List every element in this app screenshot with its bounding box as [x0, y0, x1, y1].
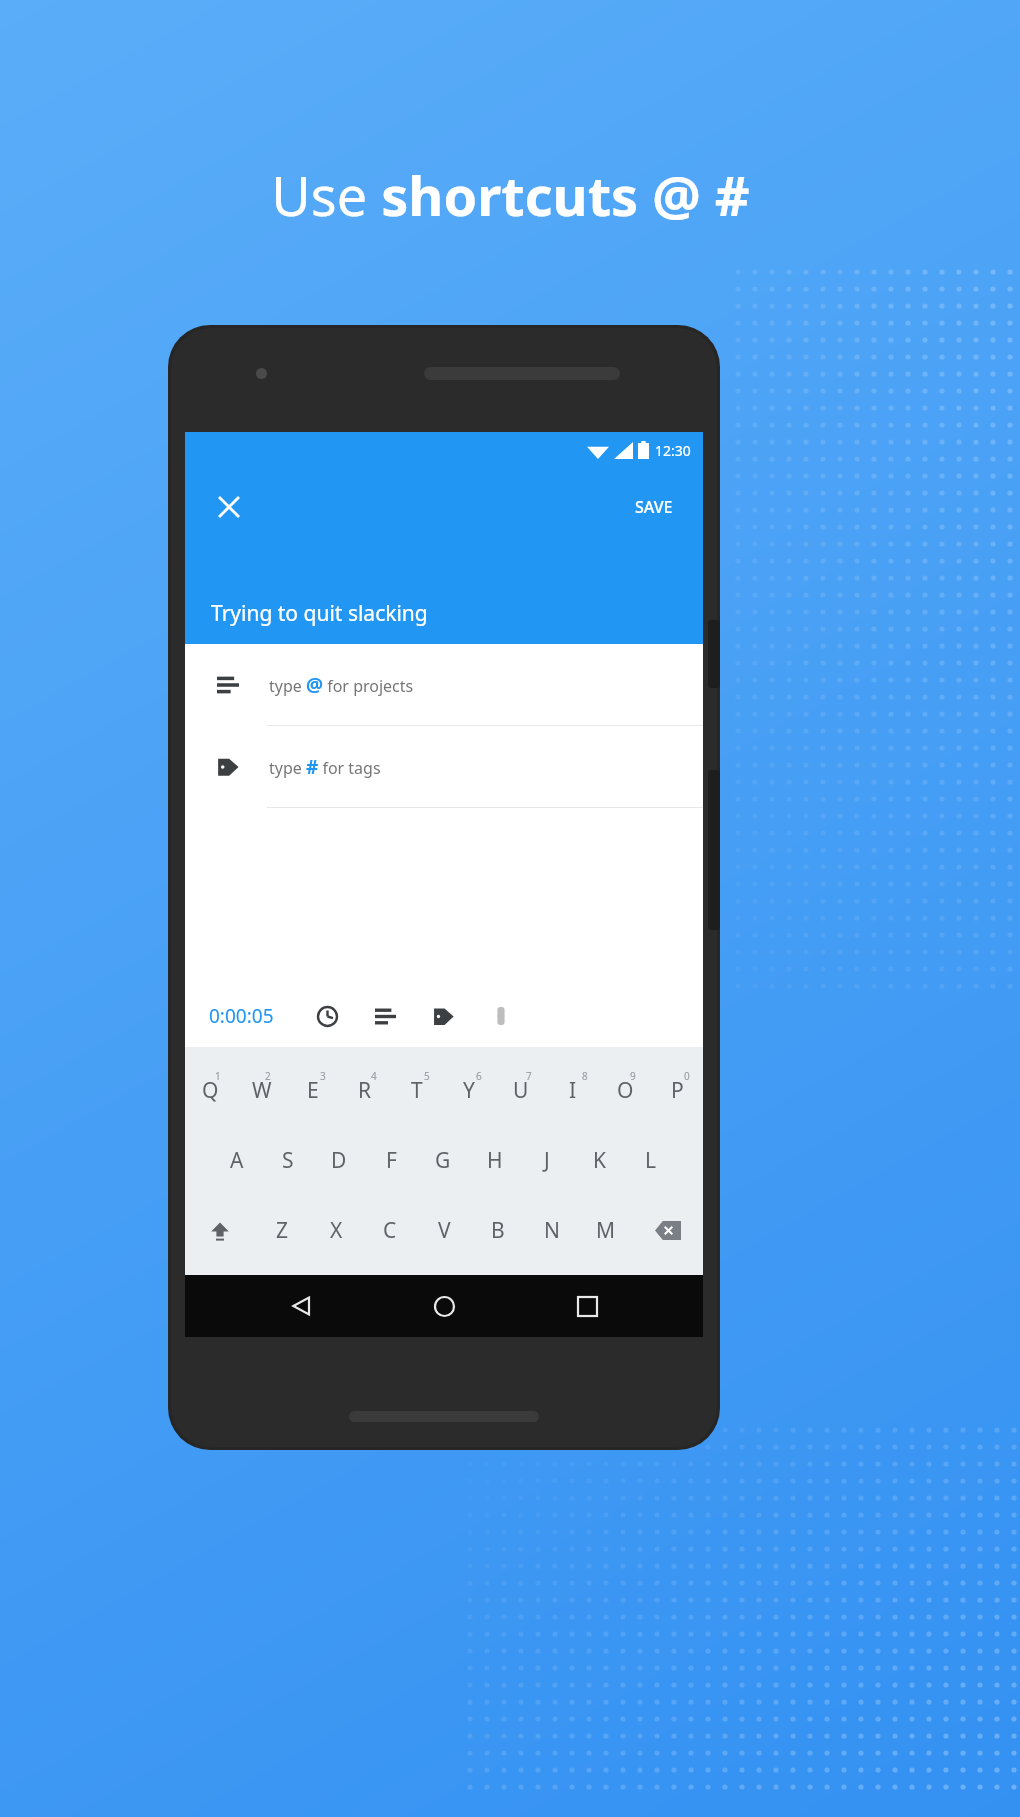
- staticText: type # for tags: [269, 754, 381, 780]
- staticText: J: [544, 1146, 550, 1175]
- button[interactable]: T: [391, 1055, 443, 1125]
- button[interactable]: Timer: [306, 995, 348, 1037]
- button[interactable]: A: [211, 1125, 262, 1195]
- staticText: A: [230, 1146, 244, 1175]
- button[interactable]: Shift: [185, 1195, 255, 1266]
- button[interactable]: Backspace: [633, 1195, 703, 1266]
- staticText: Use shortcuts @ #: [271, 158, 750, 232]
- button[interactable]: X: [309, 1195, 363, 1266]
- staticText: M: [596, 1216, 616, 1245]
- staticText: 2: [265, 1069, 271, 1083]
- button[interactable]: Back: [274, 1279, 328, 1333]
- button[interactable]: Emoji: [302, 1266, 351, 1337]
- staticText: 4: [371, 1069, 377, 1083]
- button[interactable]: O: [599, 1055, 651, 1125]
- button[interactable]: C: [363, 1195, 417, 1266]
- button[interactable]: Tag: [422, 995, 464, 1037]
- button[interactable]: I: [547, 1055, 599, 1125]
- staticText: P: [671, 1076, 684, 1105]
- button[interactable]: Space: [357, 1283, 572, 1320]
- button[interactable]: N: [525, 1195, 579, 1266]
- button[interactable]: Project: [364, 995, 406, 1037]
- staticText: N: [544, 1216, 560, 1245]
- button[interactable]: E: [287, 1055, 339, 1125]
- staticText: 0:00:05: [209, 1003, 274, 1029]
- staticText: 7: [526, 1069, 532, 1083]
- button[interactable]: .: [578, 1266, 627, 1337]
- staticText: SAVE: [635, 496, 673, 518]
- staticText: 0: [684, 1069, 690, 1083]
- button[interactable]: V: [417, 1195, 471, 1266]
- staticText: 12:30: [655, 441, 691, 460]
- button[interactable]: Q: [185, 1055, 236, 1125]
- staticText: Trying to quit slacking: [211, 599, 428, 628]
- staticText: T: [411, 1076, 423, 1105]
- staticText: 6: [476, 1069, 482, 1083]
- staticText: Q: [202, 1076, 219, 1105]
- staticText: O: [617, 1076, 634, 1105]
- staticText: type @ for projects: [269, 672, 414, 698]
- staticText: E: [307, 1076, 319, 1105]
- button[interactable]: Close: [207, 485, 251, 529]
- staticText: X: [330, 1216, 343, 1245]
- staticText: 1: [215, 1069, 221, 1083]
- button[interactable]: S: [262, 1125, 313, 1195]
- staticText: 9: [630, 1069, 636, 1083]
- staticText: U: [513, 1076, 529, 1105]
- button[interactable]: Recents: [560, 1279, 614, 1333]
- staticText: F: [386, 1146, 397, 1175]
- staticText: 8: [582, 1069, 588, 1083]
- button[interactable]: D: [313, 1125, 365, 1195]
- button[interactable]: More: [480, 995, 522, 1037]
- staticText: C: [383, 1216, 397, 1245]
- button[interactable]: P: [651, 1055, 703, 1125]
- staticText: V: [438, 1216, 451, 1245]
- button[interactable]: B: [471, 1195, 525, 1266]
- staticText: B: [491, 1216, 505, 1245]
- staticText: G: [435, 1146, 451, 1175]
- button[interactable]: Y: [443, 1055, 495, 1125]
- staticText: R: [358, 1076, 372, 1105]
- button[interactable]: Z: [255, 1195, 309, 1266]
- button[interactable]: ,: [254, 1266, 302, 1337]
- button[interactable]: Home: [417, 1279, 471, 1333]
- button[interactable]: U: [495, 1055, 547, 1125]
- button[interactable]: ?123: [185, 1266, 254, 1337]
- staticText: I: [569, 1076, 577, 1105]
- button[interactable]: R: [339, 1055, 391, 1125]
- button[interactable]: W: [236, 1055, 287, 1125]
- staticText: S: [282, 1146, 294, 1175]
- button[interactable]: J: [521, 1125, 573, 1195]
- staticText: D: [331, 1146, 347, 1175]
- staticText: K: [593, 1146, 606, 1175]
- staticText: 5: [424, 1069, 430, 1083]
- staticText: W: [252, 1076, 272, 1105]
- button[interactable]: F: [365, 1125, 417, 1195]
- button[interactable]: L: [625, 1125, 677, 1195]
- button[interactable]: M: [579, 1195, 633, 1266]
- staticText: L: [645, 1146, 657, 1175]
- staticText: Z: [276, 1216, 289, 1245]
- staticText: 3: [320, 1069, 326, 1083]
- staticText: H: [487, 1146, 503, 1175]
- button[interactable]: G: [417, 1125, 469, 1195]
- button[interactable]: H: [469, 1125, 521, 1195]
- staticText: Y: [463, 1076, 475, 1105]
- button[interactable]: K: [573, 1125, 625, 1195]
- button[interactable]: type @ for projects: [185, 644, 703, 725]
- button[interactable]: type # for tags: [185, 726, 703, 807]
- button[interactable]: SAVE: [627, 486, 681, 528]
